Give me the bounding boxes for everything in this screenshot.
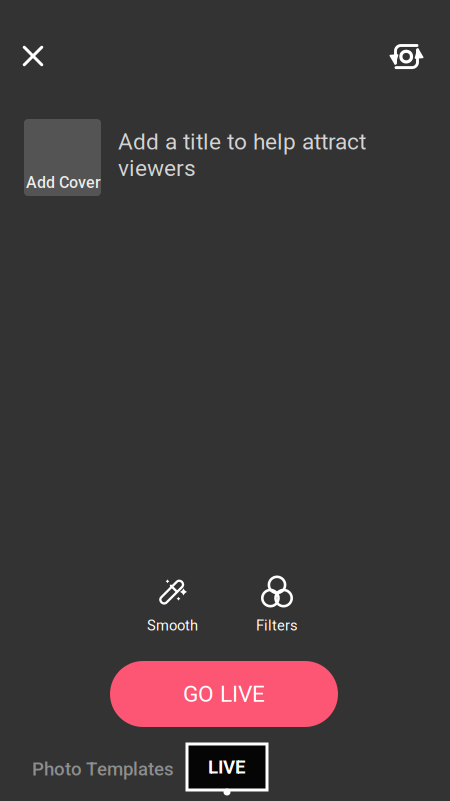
button[interactable]: GO LIVE xyxy=(110,661,338,727)
staticText: LIVE xyxy=(208,756,246,778)
staticText: GO LIVE xyxy=(183,681,265,707)
staticText: Filters xyxy=(256,617,298,634)
staticText: Add Cover xyxy=(26,173,101,192)
staticText: Smooth xyxy=(147,617,198,634)
button[interactable]: Filters xyxy=(234,574,320,636)
button[interactable]: LIVE xyxy=(187,744,267,790)
button[interactable]: Add Cover xyxy=(24,119,101,196)
button[interactable]: Photo Templates xyxy=(32,758,174,780)
button[interactable]: Flip camera xyxy=(383,34,429,80)
staticText: Add a title to help attract viewers xyxy=(118,128,366,181)
button[interactable]: Add a title to help attract viewers xyxy=(118,128,373,181)
staticText: Photo Templates xyxy=(32,758,174,780)
button[interactable]: Smooth xyxy=(129,574,215,636)
button[interactable]: Close xyxy=(10,33,56,79)
